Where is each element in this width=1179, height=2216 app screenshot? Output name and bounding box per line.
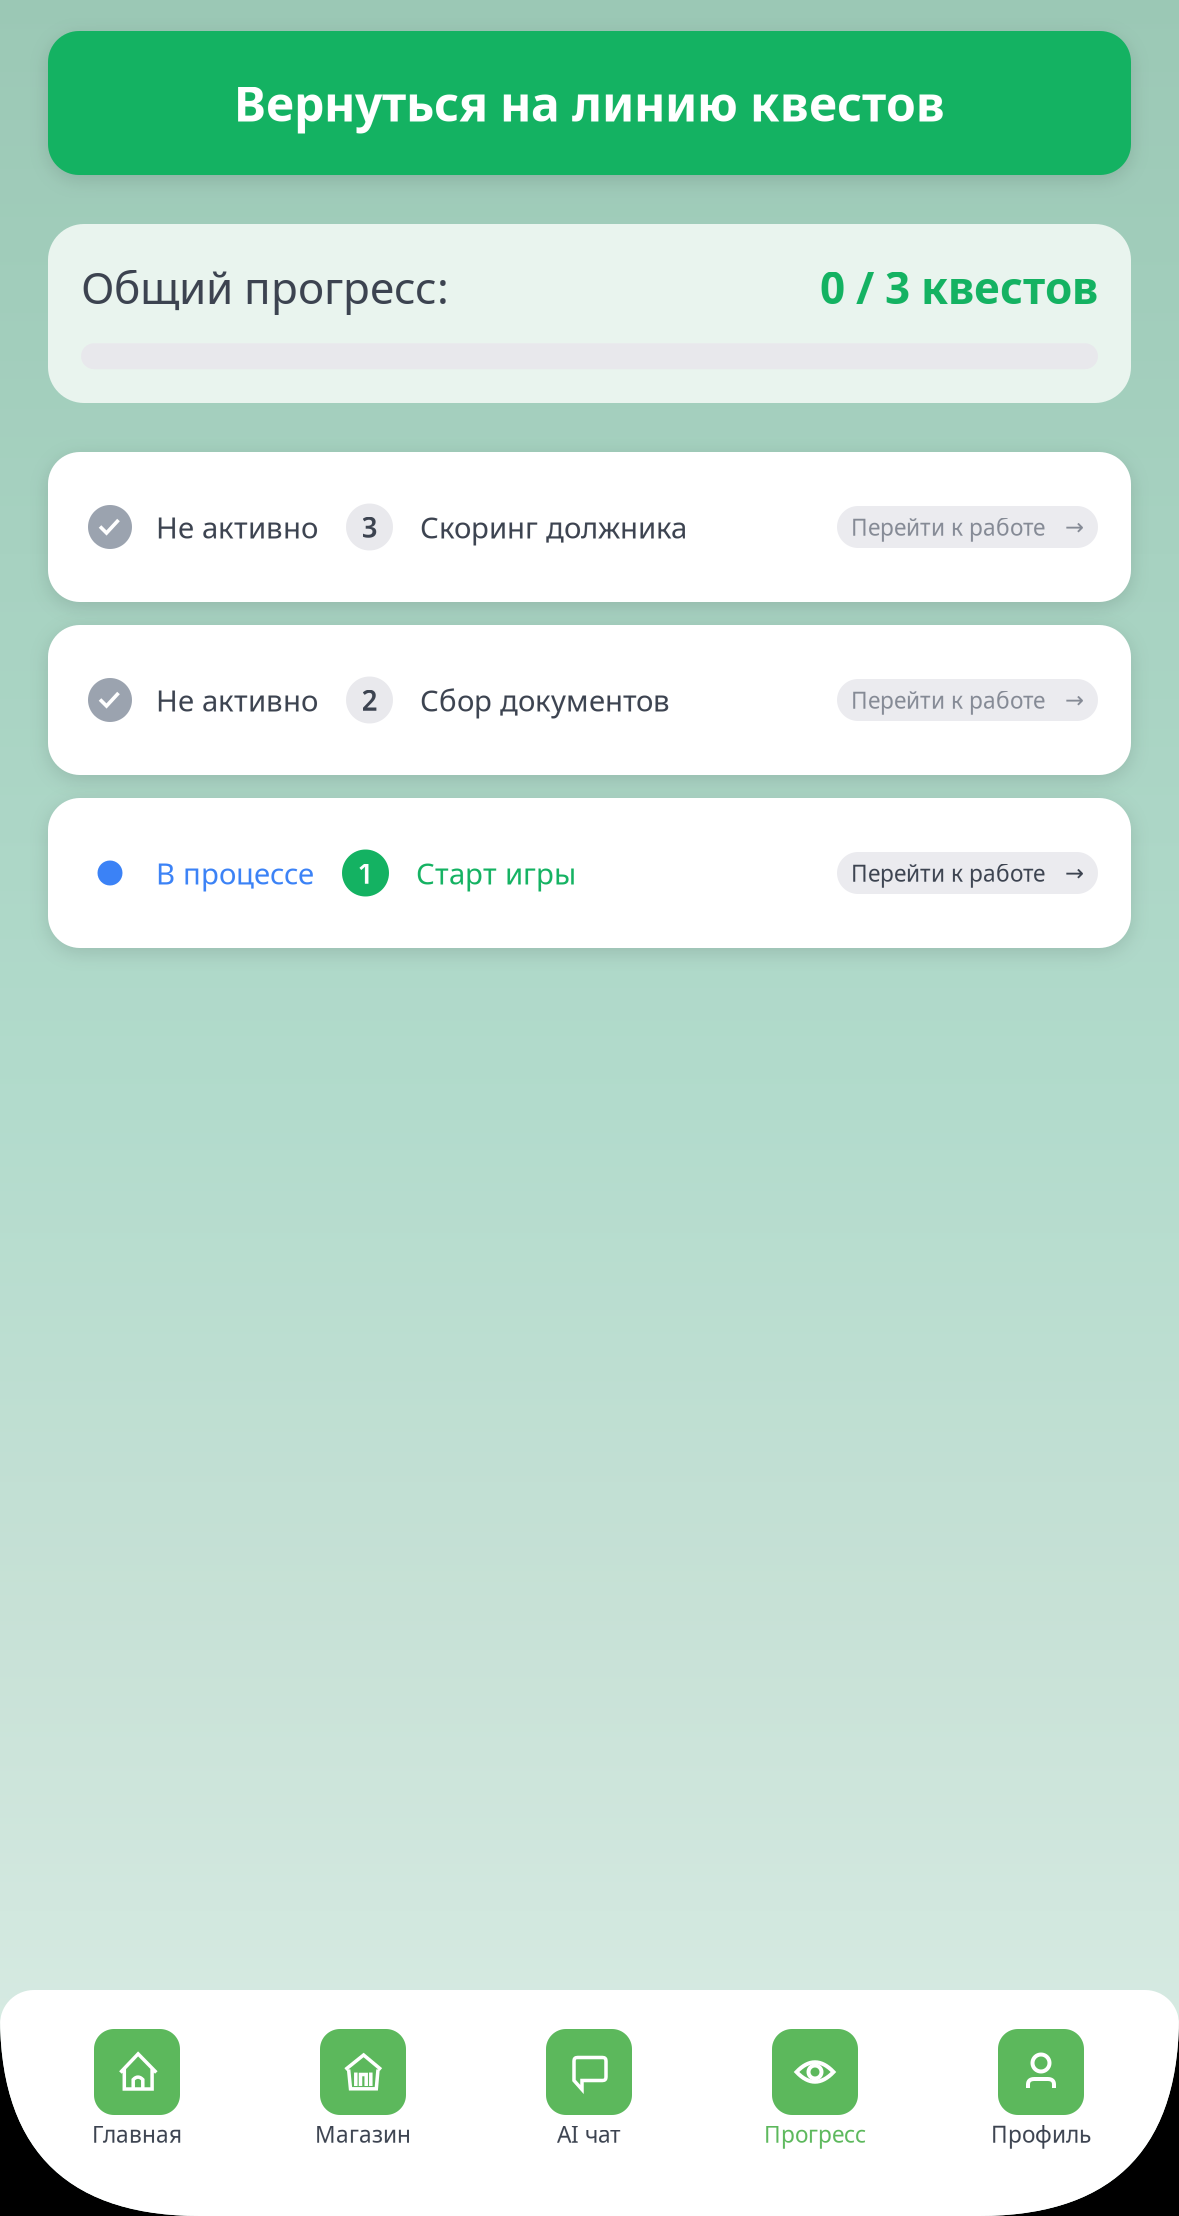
button[interactable]: AI чат <box>476 2029 702 2149</box>
button[interactable]: Магазин <box>250 2029 476 2149</box>
staticText: Сбор документов <box>420 680 670 719</box>
button[interactable]: Профиль <box>928 2029 1154 2149</box>
button[interactable]: Перейти к работе <box>837 506 1098 548</box>
staticText: → <box>1065 514 1084 540</box>
staticText: Главная <box>92 2119 182 2149</box>
staticText: Магазин <box>315 2119 411 2149</box>
button[interactable]: Главная <box>24 2029 250 2149</box>
staticText: Скоринг должника <box>420 507 687 546</box>
button[interactable]: Вернуться на линию квестов <box>48 31 1131 175</box>
staticText: 1 <box>357 854 373 892</box>
button[interactable]: Не активно <box>48 625 1131 775</box>
button[interactable]: Перейти к работе <box>837 679 1098 721</box>
staticText: Не активно <box>156 507 318 546</box>
staticText: Общий прогресс: <box>81 258 449 316</box>
staticText: 2 <box>361 681 377 719</box>
staticText: Перейти к работе <box>851 858 1045 888</box>
button[interactable]: Перейти к работе <box>837 852 1098 894</box>
button[interactable]: Не активно <box>48 452 1131 602</box>
staticText: AI чат <box>557 2119 621 2149</box>
staticText: Профиль <box>991 2119 1091 2149</box>
staticText: Вернуться на линию квестов <box>234 71 945 135</box>
staticText: 3 <box>361 508 377 546</box>
staticText: → <box>1065 860 1084 886</box>
staticText: Перейти к работе <box>851 512 1045 542</box>
staticText: Перейти к работе <box>851 685 1045 715</box>
staticText: В процессе <box>156 853 314 892</box>
staticText: → <box>1065 687 1084 713</box>
staticText: Не активно <box>156 680 318 719</box>
staticText: Прогресс <box>764 2119 866 2149</box>
button[interactable]: Прогресс <box>702 2029 928 2149</box>
button[interactable]: В процессе <box>48 798 1131 948</box>
staticText: Старт игры <box>416 853 576 892</box>
staticText: 0 / 3 квестов <box>820 258 1098 316</box>
